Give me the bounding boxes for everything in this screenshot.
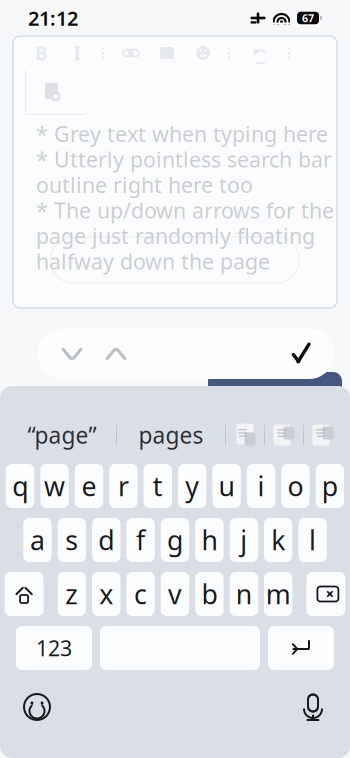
staticText: w <box>44 468 65 504</box>
staticText: pages <box>138 420 203 450</box>
button[interactable]: x <box>92 572 120 616</box>
staticText: u <box>219 468 235 504</box>
button[interactable]: Italic <box>67 42 87 64</box>
button[interactable]: Done <box>278 332 326 376</box>
button[interactable]: w <box>40 464 69 508</box>
staticText: e <box>81 468 96 504</box>
button[interactable]: m <box>264 572 292 616</box>
button[interactable]: p <box>316 464 344 508</box>
button[interactable]: Delete <box>306 572 345 616</box>
staticText: z <box>65 576 78 612</box>
staticText: 67 <box>302 11 314 25</box>
button[interactable]: 123 <box>16 626 92 670</box>
staticText: 123 <box>36 634 72 662</box>
staticText: halfway down the page <box>36 247 270 275</box>
staticText: h <box>201 522 217 558</box>
staticText: outline right here too <box>36 171 253 199</box>
button[interactable]: k <box>264 518 292 562</box>
button[interactable]: Link <box>121 42 141 64</box>
button[interactable]: r <box>109 464 138 508</box>
button[interactable]: y <box>178 464 206 508</box>
staticText: o <box>287 468 303 504</box>
button[interactable]: j <box>230 518 258 562</box>
button[interactable]: d <box>92 518 120 562</box>
button[interactable]: u <box>212 464 241 508</box>
staticText: * Utterly pointless search bar <box>36 145 332 173</box>
button[interactable]: pages <box>117 414 225 456</box>
staticText: B <box>35 41 47 65</box>
staticText: x <box>99 576 113 612</box>
staticText: page just randomly floating <box>36 222 315 250</box>
button[interactable]: b <box>195 572 224 616</box>
button[interactable]: e <box>75 464 103 508</box>
button[interactable]: o <box>281 464 310 508</box>
button[interactable]: Page emoji <box>265 414 303 456</box>
staticText: i <box>257 468 264 504</box>
staticText: p <box>322 468 338 504</box>
button[interactable]: Find in document <box>39 79 65 105</box>
button[interactable]: Pages emoji <box>304 414 342 456</box>
staticText: t <box>153 468 163 504</box>
staticText: y <box>185 468 199 504</box>
button[interactable]: Next <box>94 332 138 376</box>
staticText: b <box>201 576 217 612</box>
staticText: a <box>30 522 45 558</box>
staticText: q <box>12 468 28 504</box>
staticText: 21:12 <box>28 5 78 31</box>
button[interactable]: Dictate <box>290 685 336 729</box>
button[interactable]: q <box>6 464 34 508</box>
button[interactable]: Image <box>157 42 177 64</box>
staticText: I <box>73 41 80 65</box>
staticText: “page” <box>27 420 96 450</box>
button[interactable]: a <box>23 518 52 562</box>
staticText: k <box>271 522 285 558</box>
staticText: j <box>240 522 247 558</box>
staticText: f <box>136 522 145 558</box>
button[interactable]: h <box>195 518 224 562</box>
button[interactable]: l <box>298 518 327 562</box>
button[interactable]: “page” <box>8 414 116 456</box>
button[interactable]: n <box>230 572 258 616</box>
staticText: * The up/down arrows for the <box>36 196 334 224</box>
button[interactable]: z <box>58 572 86 616</box>
staticText: v <box>168 576 182 612</box>
button[interactable]: v <box>161 572 189 616</box>
button[interactable]: Emoji <box>193 42 213 64</box>
staticText: l <box>309 522 316 558</box>
button[interactable]: c <box>126 572 155 616</box>
staticText: r <box>118 468 129 504</box>
button[interactable]: Document emoji <box>226 414 264 456</box>
button[interactable]: g <box>161 518 189 562</box>
button[interactable]: i <box>247 464 275 508</box>
button[interactable]: Previous <box>50 332 94 376</box>
staticText: s <box>65 522 78 558</box>
staticText: d <box>98 522 114 558</box>
staticText: m <box>266 576 291 612</box>
button[interactable]: B <box>31 42 51 64</box>
button[interactable]: s <box>58 518 86 562</box>
button[interactable]: Emoji keyboard <box>14 685 60 729</box>
button[interactable]: f <box>126 518 155 562</box>
staticText: n <box>236 576 252 612</box>
button[interactable]: Return <box>268 626 334 670</box>
staticText: g <box>167 522 183 558</box>
button[interactable]: Shift <box>5 572 44 616</box>
staticText: * Grey text when typing here <box>36 120 328 148</box>
button[interactable]: Undo <box>251 42 271 64</box>
button[interactable]: t <box>144 464 172 508</box>
staticText: c <box>134 576 147 612</box>
